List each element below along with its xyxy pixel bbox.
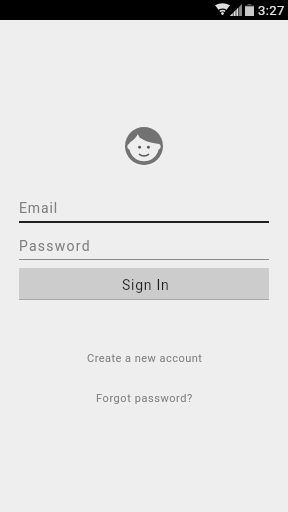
staticText: Forgot password?: [96, 392, 193, 405]
staticText: Sign In: [122, 277, 170, 293]
other: Account avatar: [125, 127, 163, 165]
other: Mobile signal: [230, 4, 242, 16]
button[interactable]: Email: [19, 195, 269, 223]
button[interactable]: Forgot password?: [0, 388, 288, 408]
staticText: Email: [19, 200, 58, 216]
button[interactable]: Create a new account: [0, 348, 288, 368]
button[interactable]: Password: [19, 233, 269, 260]
button[interactable]: Sign In: [19, 268, 269, 300]
other: Wi-Fi signal: [215, 4, 230, 15]
staticText: 3:27: [258, 3, 285, 18]
other: Battery: [245, 4, 254, 16]
staticText: Create a new account: [87, 352, 203, 365]
staticText: Password: [19, 238, 91, 254]
